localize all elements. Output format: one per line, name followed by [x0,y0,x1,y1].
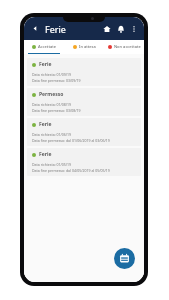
button[interactable]: Accettate [24,40,64,53]
staticText: Ferie [39,121,52,128]
staticText: Data fine permesso: 03/09/19 [32,78,81,83]
staticText: Data fine permesso: dal 01/06/2019 al 03… [32,138,110,143]
staticText: Data richiesta: 01/09/19 [32,72,72,77]
staticText: Data fine permesso: dal 04/05/2019 al 05… [32,168,110,173]
button[interactable]: Home [101,23,113,35]
staticText: Ferie [39,151,52,158]
staticText: Permesso [39,91,64,98]
button[interactable]: Nuova richiesta [114,248,135,269]
staticText: Data richiesta: 01/05/19 [32,162,72,167]
button[interactable]: Indietro [29,22,42,35]
button[interactable]: Ferie [27,58,141,86]
button[interactable]: Altre opzioni [128,23,139,34]
staticText: Data fine permesso: 03/08/19 [32,108,81,113]
button[interactable]: Non accettate [104,40,144,53]
button[interactable]: Notifiche [115,23,127,35]
staticText: Ferie [39,61,52,68]
button[interactable]: In attesa [64,40,104,53]
staticText: Accettate [38,44,57,49]
button[interactable]: Ferie [27,118,141,146]
staticText: Ferie [45,23,66,35]
staticText: Data richiesta: 01/08/19 [32,102,72,107]
button[interactable]: Permesso [27,88,141,116]
button[interactable]: Ferie [27,148,141,176]
staticText: In attesa [79,44,96,49]
staticText: Data richiesta: 01/06/19 [32,132,72,137]
staticText: Non accettate [114,44,141,49]
